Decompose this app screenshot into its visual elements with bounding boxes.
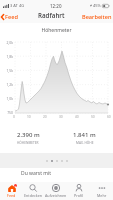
- staticText: 0: [13, 115, 15, 119]
- staticText: 45%: [93, 3, 101, 8]
- button[interactable]: Profil: [67, 182, 90, 200]
- button[interactable]: Mehr: [90, 182, 113, 200]
- staticText: 60: [107, 115, 111, 119]
- staticText: 1,5k: [1, 68, 13, 73]
- button[interactable]: Du warst mit: [21, 170, 113, 177]
- staticText: Aufzeichnen: [45, 193, 67, 198]
- button[interactable]: Aufzeichnen: [44, 182, 67, 200]
- staticText: 1,2k: [1, 82, 13, 87]
- button[interactable]: Feed: [0, 11, 20, 23]
- staticText: 20: [43, 115, 47, 119]
- staticText: 30: [59, 115, 63, 119]
- staticText: Entdecken: [24, 193, 43, 198]
- staticText: 40: [75, 115, 79, 119]
- staticText: 2,0k: [1, 40, 13, 45]
- staticText: 750: [1, 110, 13, 115]
- staticText: 1: [15, 184, 17, 187]
- staticText: Mehr: [97, 193, 107, 198]
- button[interactable]: Feed: [0, 182, 22, 200]
- staticText: 10: [27, 115, 31, 119]
- button[interactable]: Bearbeiten: [80, 11, 113, 23]
- staticText: 1,0k: [1, 96, 13, 101]
- staticText: 4G: [19, 3, 25, 8]
- staticText: HÖHENMETER: [17, 141, 39, 145]
- staticText: 1.841 m: [73, 131, 96, 139]
- staticText: Bearbeiten: [82, 13, 112, 21]
- staticText: Höhenmeter: [0, 27, 113, 34]
- staticText: 1,8k: [1, 54, 13, 59]
- staticText: Profil: [74, 193, 84, 198]
- staticText: Radfahrt: [38, 11, 65, 19]
- staticText: 3 AT: [10, 3, 18, 8]
- staticText: Du warst mit: [21, 170, 52, 177]
- staticText: 2.390 m: [17, 131, 40, 139]
- staticText: 12:20: [50, 3, 62, 9]
- staticText: Feed: [7, 193, 16, 198]
- staticText: Feed: [5, 13, 18, 21]
- staticText: MAX. HÖHE: [76, 141, 94, 145]
- button[interactable]: Entdecken: [22, 182, 44, 200]
- staticText: 50: [91, 115, 95, 119]
